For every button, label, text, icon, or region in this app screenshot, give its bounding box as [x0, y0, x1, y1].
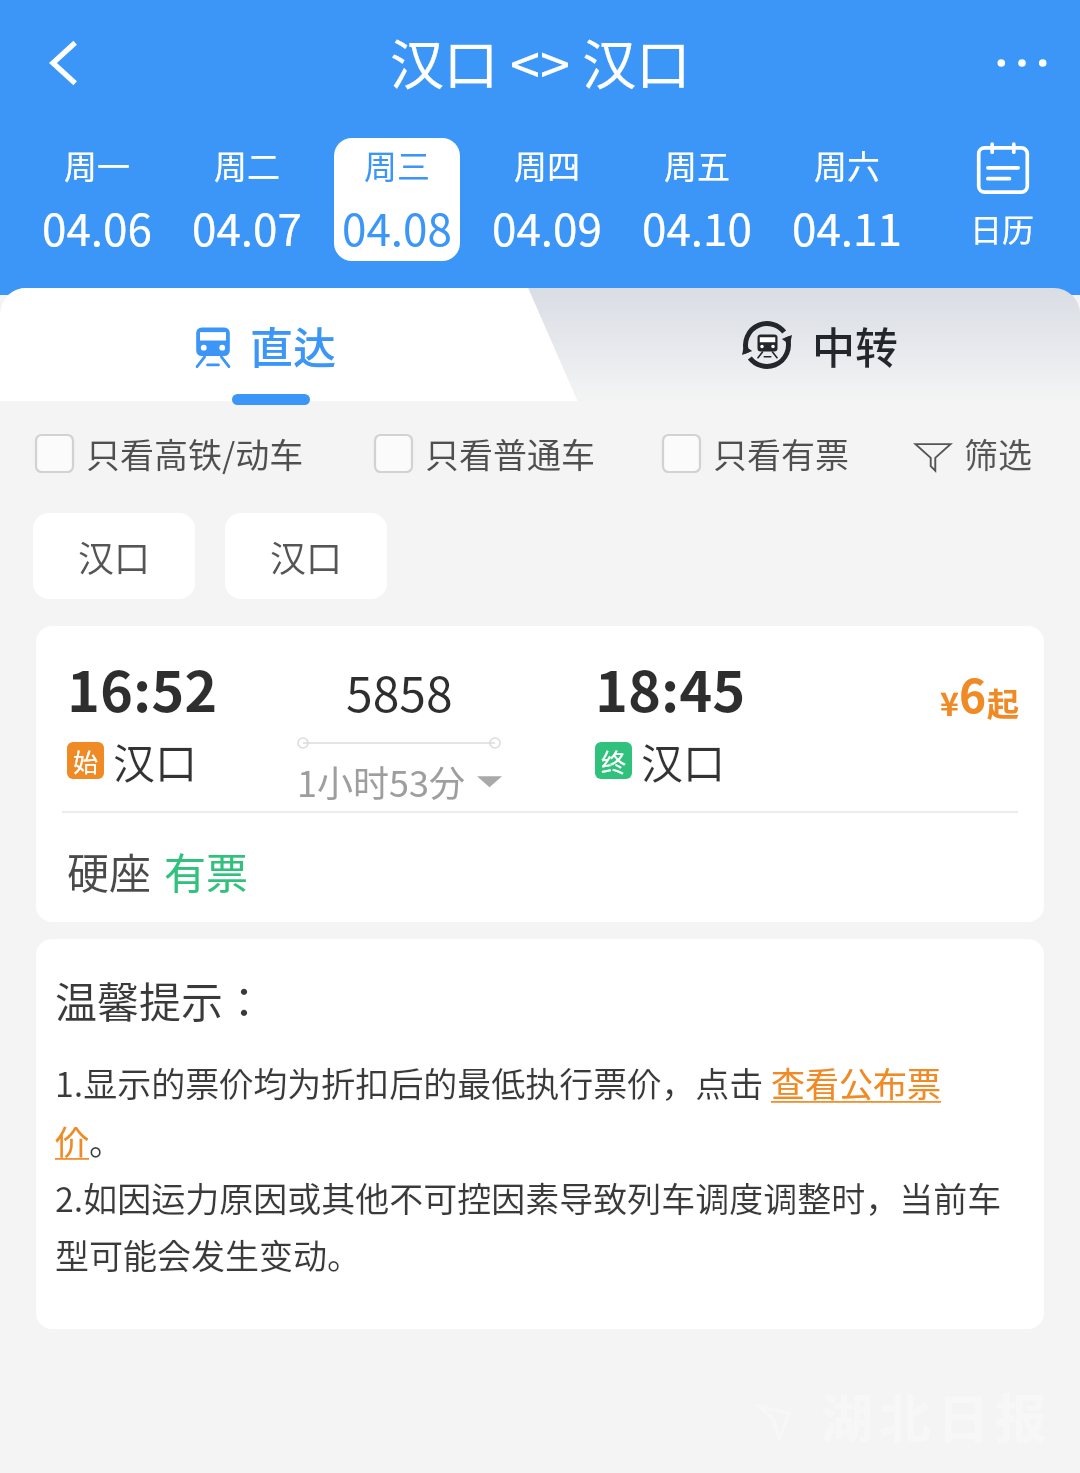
staticText: 周四: [514, 141, 580, 189]
staticText: 1小时53分: [297, 755, 465, 807]
staticText: 04.10: [642, 195, 752, 259]
button[interactable]: 只看普通车: [367, 419, 603, 488]
staticText: 始: [73, 743, 99, 779]
staticText: 终: [601, 743, 627, 779]
staticText: 04.06: [42, 195, 152, 259]
staticText: 温馨提示：: [55, 969, 266, 1030]
button[interactable]: 周三: [334, 138, 460, 261]
staticText: 16:52: [67, 647, 218, 728]
button[interactable]: 汉口: [225, 513, 387, 599]
staticText: 筛选: [964, 429, 1032, 478]
staticText: 直达: [250, 314, 336, 376]
staticText: 04.11: [792, 195, 902, 259]
staticText: 周五: [664, 141, 730, 189]
button[interactable]: 筛选: [906, 419, 1040, 488]
staticText: 有票: [164, 840, 249, 901]
staticText: 汉口: [270, 530, 343, 582]
button[interactable]: 周一: [34, 138, 160, 261]
button[interactable]: 汉口: [33, 513, 195, 599]
staticText: 周二: [214, 141, 280, 189]
staticText: 汉口: [113, 730, 198, 791]
button[interactable]: 日历: [924, 138, 1080, 255]
button[interactable]: 中转: [556, 288, 1080, 414]
staticText: 只看高铁/动车: [86, 429, 304, 478]
staticText: 5858: [346, 656, 453, 726]
staticText: 04.07: [192, 195, 302, 259]
staticText: 只看普通车: [425, 429, 595, 478]
staticText: 04.09: [492, 195, 602, 259]
button[interactable]: Back: [28, 27, 100, 99]
staticText: 中转: [812, 314, 898, 376]
button[interactable]: 周四: [484, 138, 610, 261]
staticText: 周六: [814, 141, 880, 189]
staticText: 硬座: [67, 840, 152, 901]
staticText: ¥: [940, 679, 959, 725]
staticText: 汉口: [78, 530, 151, 582]
button[interactable]: 周六: [784, 138, 910, 261]
staticText: 1.显示的票价均为折扣后的最低执行票价，点击 查看公布票 价。 2.如因运力原因…: [55, 1058, 1002, 1278]
staticText: 6: [959, 660, 987, 727]
staticText: 18:45: [595, 647, 746, 728]
button[interactable]: 直达: [0, 288, 528, 414]
staticText: 只看有票: [713, 429, 849, 478]
staticText: 汉口 <> 汉口: [390, 22, 691, 100]
button[interactable]: 只看有票: [655, 419, 857, 488]
staticText: 起: [987, 679, 1020, 725]
button[interactable]: 周五: [634, 138, 760, 261]
staticText: 周一: [64, 141, 130, 189]
staticText: 日历: [970, 205, 1035, 251]
staticText: 汉口: [641, 730, 726, 791]
button[interactable]: 只看高铁/动车: [28, 419, 312, 488]
button[interactable]: 16:52: [36, 626, 1044, 922]
button[interactable]: More options: [986, 27, 1058, 99]
staticText: 04.08: [342, 195, 452, 259]
button[interactable]: 周二: [184, 138, 310, 261]
staticText: 周三: [364, 141, 430, 189]
